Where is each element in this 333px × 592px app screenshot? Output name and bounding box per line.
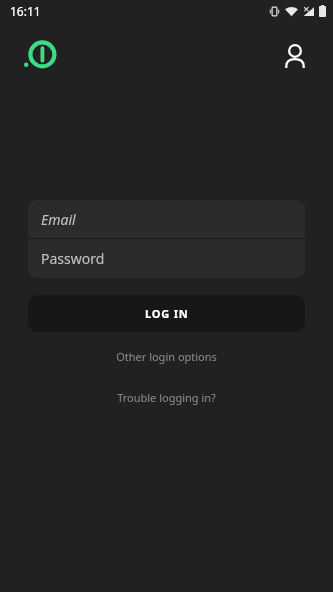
button[interactable]: Email xyxy=(28,200,305,238)
staticText: Password xyxy=(41,249,105,268)
staticText: Trouble logging in? xyxy=(117,390,216,405)
staticText: LOG IN xyxy=(145,306,189,321)
staticText: 16:11 xyxy=(10,3,41,19)
staticText: Email xyxy=(41,210,76,229)
button[interactable]: App logo xyxy=(18,34,62,78)
button[interactable]: Other login options xyxy=(0,343,333,369)
button[interactable]: Trouble logging in? xyxy=(0,384,333,410)
staticText: Other login options xyxy=(116,349,217,364)
button[interactable]: LOG IN xyxy=(28,295,305,332)
button[interactable]: Password xyxy=(28,239,305,278)
button[interactable]: Profile xyxy=(275,36,315,76)
